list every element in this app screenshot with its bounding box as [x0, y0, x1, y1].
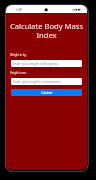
staticText: Enter your height in centimeters.	[13, 80, 62, 84]
button[interactable]: Enter your weight in kilograms.	[11, 60, 82, 67]
staticText: Height in cm.	[10, 71, 27, 75]
staticText: 3:40	[16, 8, 22, 12]
staticText: Weight in kg.	[10, 53, 27, 57]
staticText: Calculate Body Mass Index	[8, 21, 85, 40]
staticText: Enter your weight in kilograms.	[13, 62, 60, 66]
button[interactable]: Calculate	[11, 89, 82, 96]
button[interactable]: Enter your height in centimeters.	[11, 78, 82, 85]
staticText: Calculate	[41, 91, 53, 95]
